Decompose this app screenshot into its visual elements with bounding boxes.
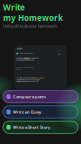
staticText: Draft a compelling introductory paragrap… xyxy=(16,57,39,61)
button[interactable]: Write an Essay xyxy=(3,106,78,118)
staticText: × xyxy=(58,53,60,56)
staticText: Ask AI xyxy=(17,48,21,50)
button[interactable]: Write a Short Story xyxy=(3,121,78,133)
staticText: Write an Essay xyxy=(13,109,41,115)
staticText: Write a Short Story xyxy=(13,125,50,130)
staticText: Processing request and thinking xyxy=(16,67,34,70)
staticText: • • xyxy=(58,49,60,51)
staticText: Utiliza AI to do your homework xyxy=(3,23,57,28)
staticText: WRITE MY HOMEWORK xyxy=(19,53,33,54)
staticText: my Homework xyxy=(3,13,63,23)
staticText: Compose a poem xyxy=(13,94,46,99)
staticText: Write xyxy=(3,2,25,13)
staticText: Creating some unique writing for you to … xyxy=(16,77,44,82)
button[interactable]: Compose a poem xyxy=(3,90,78,103)
